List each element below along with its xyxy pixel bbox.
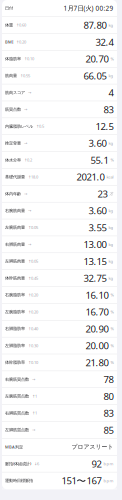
staticText: →	[28, 242, 31, 247]
staticText: 78	[103, 373, 113, 386]
staticText: 151〜167	[61, 474, 101, 487]
staticText: %	[110, 56, 113, 62]
staticText: 87.80	[83, 18, 106, 32]
button[interactable]: BMI	[2, 34, 117, 51]
button[interactable]: 体重	[2, 17, 117, 34]
button[interactable]: 推定骨量	[2, 135, 117, 152]
staticText: 左脚脂肪率	[5, 343, 25, 348]
staticText: 13.00	[83, 238, 106, 251]
staticText: ↑0.5	[36, 124, 44, 129]
staticText: 66.05	[83, 69, 106, 82]
staticText: %	[110, 360, 113, 365]
staticText: 83	[103, 406, 113, 420]
staticText: →	[24, 191, 27, 196]
button[interactable]: 左脚筋肉量	[2, 253, 117, 270]
button[interactable]: 体幹脂肪率	[2, 354, 117, 371]
staticText: bpm	[103, 461, 113, 466]
staticText: ↑18.0	[28, 174, 38, 180]
staticText: →	[24, 107, 27, 112]
button[interactable]: 左脚脂肪率	[2, 337, 117, 354]
staticText: 92	[91, 457, 101, 470]
staticText: 基礎代謝量	[5, 174, 25, 179]
staticText: kg	[108, 22, 113, 28]
button[interactable]: MBA判定	[2, 439, 117, 455]
staticText: 体重	[5, 22, 13, 28]
staticText: 筋質点数	[5, 107, 21, 112]
staticText: kg	[108, 242, 113, 247]
button[interactable]: 右脚筋肉量	[2, 236, 117, 253]
button[interactable]: 右腕筋肉量	[2, 202, 117, 219]
button[interactable]: 筋肉量	[2, 67, 117, 84]
staticText: 内臓脂肪レベル	[5, 124, 33, 129]
button[interactable]: 右脚筋質点数	[2, 405, 117, 422]
staticText: ↑0.45	[28, 275, 38, 281]
button[interactable]: 右腕脂肪率	[2, 287, 117, 304]
button[interactable]: 体幹筋肉量	[2, 270, 117, 287]
staticText: 体内年齢	[5, 191, 21, 196]
button[interactable]: 右脚脂肪率	[2, 320, 117, 337]
staticText: ↑0.10	[28, 360, 38, 365]
staticText: プロアスリート	[71, 443, 113, 450]
button[interactable]: 基礎代謝量	[2, 169, 117, 186]
button[interactable]: 左腕筋質点数	[2, 388, 117, 405]
staticText: 1月7日(火) 00:29	[63, 4, 113, 12]
staticText: 筋肉量	[5, 73, 17, 78]
staticText: %	[110, 326, 113, 331]
staticText: %	[110, 343, 113, 348]
button[interactable]: 左脚筋質点数	[2, 422, 117, 439]
staticText: ↑0.10	[24, 56, 34, 61]
staticText: 3.60	[88, 204, 106, 217]
staticText: BMI	[5, 39, 13, 45]
staticText: 右脚筋肉量	[5, 242, 25, 247]
button[interactable]: 左腕筋肉量	[2, 219, 117, 236]
staticText: →	[24, 141, 27, 145]
staticText: 23	[97, 187, 107, 200]
staticText: 体水分率	[5, 157, 21, 163]
staticText: 16.70	[85, 305, 108, 318]
staticText: kcal	[106, 174, 113, 180]
staticText: ↑0.20	[16, 39, 26, 45]
button[interactable]: 右腕筋質点数	[2, 371, 117, 388]
button[interactable]: 筋質点数	[2, 101, 117, 118]
staticText: kg	[108, 225, 113, 230]
staticText: kg	[108, 140, 113, 146]
button[interactable]: 筋肉スコア	[2, 84, 117, 101]
button[interactable]: 日付	[2, 0, 117, 17]
button[interactable]: 体内年齢	[2, 186, 117, 202]
staticText: bpm	[103, 478, 113, 483]
staticText: 55.1	[90, 153, 108, 167]
button[interactable]: 運動時目標脈拍	[2, 472, 117, 489]
staticText: 32.4	[95, 35, 113, 48]
staticText: kg	[108, 73, 113, 78]
staticText: 日付	[5, 6, 13, 11]
button[interactable]: 体水分率	[2, 152, 117, 169]
staticText: 右腕筋肉量	[5, 208, 25, 213]
staticText: ↑0.20	[28, 292, 38, 298]
staticText: 83	[103, 103, 113, 116]
button[interactable]: 脈拍(体組成計)	[2, 455, 117, 472]
staticText: 左腕筋質点数	[5, 394, 29, 399]
staticText: 2021.0	[76, 170, 104, 183]
staticText: 4	[108, 86, 113, 99]
staticText: kg	[108, 275, 113, 281]
staticText: 才	[109, 191, 113, 196]
staticText: ↑0.60	[16, 22, 26, 28]
button[interactable]: 内臓脂肪レベル	[2, 118, 117, 135]
staticText: 85	[103, 423, 113, 436]
button[interactable]: 体脂肪率	[2, 51, 117, 67]
staticText: →	[28, 90, 31, 95]
staticText: 脈拍(体組成計)	[5, 461, 31, 466]
staticText: 20.70	[85, 52, 108, 65]
staticText: 推定骨量	[5, 140, 21, 146]
staticText: ↑1	[32, 410, 37, 416]
staticText: 右腕筋質点数	[5, 377, 29, 382]
staticText: 右腕脂肪率	[5, 292, 25, 298]
button[interactable]: 左腕脂肪率	[2, 304, 117, 321]
staticText: ↑0.05	[28, 258, 38, 264]
staticText: 左腕脂肪率	[5, 309, 25, 314]
staticText: kg	[108, 258, 113, 264]
staticText: 左腕筋肉量	[5, 225, 25, 230]
staticText: %	[110, 292, 113, 298]
staticText: %	[110, 309, 113, 315]
staticText: 体幹脂肪率	[5, 360, 25, 365]
